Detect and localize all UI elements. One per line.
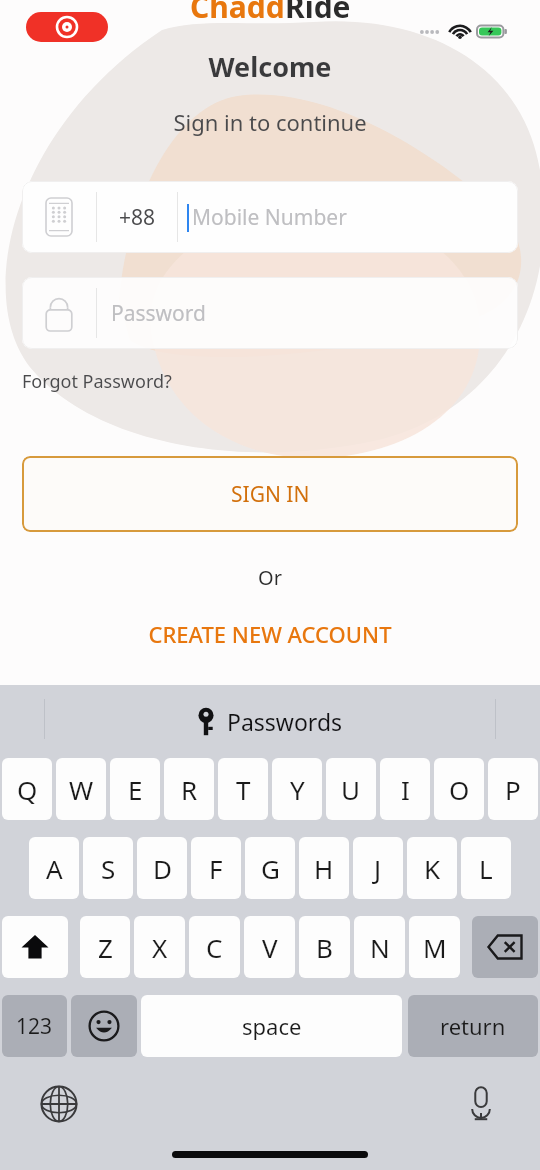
button[interactable]: J [353,837,403,899]
staticText: V [262,930,278,965]
staticText: C [206,930,223,965]
button[interactable]: return [408,995,538,1057]
staticText: E [128,772,143,807]
staticText: Sign in to continue [0,107,540,137]
staticText: I [401,772,410,807]
button[interactable]: T [218,758,268,820]
staticText: CREATE NEW ACCOUNT [148,619,392,649]
staticText: P [505,772,521,807]
staticText: W [69,772,94,807]
staticText: T [236,772,251,807]
button[interactable]: W [56,758,106,820]
button[interactable]: Dictation [458,1081,504,1127]
staticText: K [424,851,441,886]
staticText: A [46,851,63,886]
button[interactable]: A [29,837,79,899]
staticText: Forgot Password? [22,369,172,394]
button[interactable]: K [407,837,457,899]
staticText: return [440,1011,506,1041]
button[interactable]: +88 [22,181,518,253]
button[interactable]: O [434,758,484,820]
button[interactable]: B [299,916,350,978]
staticText: Y [290,772,305,807]
button[interactable]: N [354,916,405,978]
button[interactable]: D [137,837,187,899]
staticText: X [152,930,168,965]
staticText: F [209,851,223,886]
staticText: Chadd [190,0,285,27]
button[interactable]: Shift [2,916,68,978]
button[interactable]: F [191,837,241,899]
button[interactable]: Passwords [0,685,540,758]
button[interactable]: P [488,758,538,820]
staticText: J [374,851,382,886]
button[interactable]: 123 [2,995,67,1057]
button[interactable]: R [164,758,214,820]
button[interactable]: Backspace [472,916,538,978]
staticText: O [449,772,470,807]
button[interactable]: M [409,916,460,978]
button[interactable]: Forgot Password? [22,369,172,394]
staticText: space [242,1011,302,1041]
button[interactable]: G [245,837,295,899]
staticText: Welcome [0,48,540,85]
staticText: R [181,772,198,807]
button[interactable]: Q [2,758,52,820]
button[interactable]: CREATE NEW ACCOUNT [0,619,540,649]
button[interactable]: C [189,916,240,978]
button[interactable]: E [110,758,160,820]
button[interactable]: X [134,916,185,978]
button[interactable]: Emoji [71,995,137,1057]
staticText: Or [0,564,540,591]
button[interactable]: S [83,837,133,899]
staticText: Passwords [227,706,343,737]
staticText: N [370,930,390,965]
button[interactable]: Password [22,277,518,349]
button[interactable]: space [141,995,402,1057]
button[interactable]: Z [80,916,130,978]
button[interactable]: Y [272,758,322,820]
staticText: L [479,851,493,886]
button[interactable]: V [244,916,295,978]
staticText: U [341,772,361,807]
staticText: Q [17,772,38,807]
staticText: Mobile Number [192,203,347,232]
staticText: 123 [16,1012,53,1041]
button[interactable]: U [326,758,376,820]
staticText: Ride [285,0,351,27]
button[interactable]: Screen recording [26,12,108,42]
staticText: D [153,851,172,886]
button[interactable]: L [461,837,511,899]
staticText: H [314,851,334,886]
button[interactable]: I [380,758,430,820]
staticText: SIGN IN [231,480,310,509]
staticText: +88 [119,203,156,232]
staticText: Password [111,299,206,328]
button[interactable]: Change keyboard [36,1081,82,1127]
staticText: M [423,930,447,965]
button[interactable]: H [299,837,349,899]
staticText: Z [98,930,113,965]
staticText: G [261,851,280,886]
staticText: B [316,930,333,965]
staticText: S [101,851,116,886]
button[interactable]: SIGN IN [22,456,518,532]
